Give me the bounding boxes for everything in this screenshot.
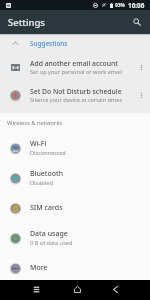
button[interactable]: Data usage — [0, 223, 150, 253]
button[interactable]: More options — [132, 81, 150, 109]
staticText: Disconnected — [30, 149, 66, 157]
staticText: SIM cards — [30, 203, 63, 213]
staticText: Bluetooth — [30, 169, 64, 179]
button[interactable]: Back — [105, 279, 125, 299]
staticText: Data usage — [30, 229, 68, 239]
staticText: Set up your personal or work email — [30, 68, 123, 76]
button[interactable]: Bluetooth — [0, 163, 150, 193]
staticText: Wireless & networks — [7, 119, 63, 127]
staticText: 16:06 — [128, 1, 145, 10]
staticText: 93% — [115, 2, 125, 9]
staticText: 0 B of data used — [30, 239, 73, 247]
button[interactable]: Set Do Not Disturb schedule — [0, 81, 150, 109]
staticText: Add another email account — [30, 59, 118, 68]
button[interactable]: SIM cards — [0, 193, 150, 223]
staticText: Silence your device at certain times — [30, 96, 123, 104]
staticText: More — [30, 263, 48, 273]
staticText: Suggestions — [30, 39, 68, 48]
staticText: Set Do Not Disturb schedule — [30, 87, 122, 96]
staticText: Disabled — [30, 179, 53, 187]
button[interactable]: More options — [132, 53, 150, 81]
button[interactable]: Recents — [26, 279, 46, 299]
button[interactable]: Search — [129, 14, 145, 30]
staticText: Wi-Fi — [30, 139, 47, 149]
staticText: Settings — [8, 16, 45, 29]
button[interactable]: Add another email account — [0, 53, 150, 81]
button[interactable]: Home — [67, 279, 87, 299]
button[interactable]: Wi-Fi — [0, 133, 150, 163]
button[interactable]: Suggestions — [0, 34, 150, 53]
button[interactable]: More — [0, 253, 150, 283]
